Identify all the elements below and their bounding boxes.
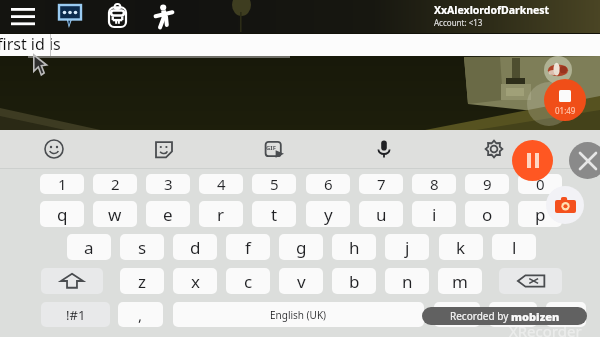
button[interactable]: h	[332, 234, 376, 260]
staticText: !#1	[66, 306, 86, 324]
button[interactable]: 2	[93, 174, 137, 194]
staticText: v	[297, 270, 306, 293]
button[interactable]: 4	[199, 174, 243, 194]
button[interactable]: XxAlexlordofDarknest	[434, 3, 550, 28]
button[interactable]: Menu	[8, 0, 38, 33]
staticText: z	[138, 270, 146, 293]
button[interactable]: ,	[118, 302, 163, 327]
button[interactable]: j	[385, 234, 429, 260]
button[interactable]: Voice input	[374, 139, 394, 159]
staticText: j	[405, 236, 410, 259]
button[interactable]: c	[226, 268, 270, 294]
staticText: k	[456, 236, 466, 259]
staticText: g	[296, 236, 307, 259]
button[interactable]: g	[279, 234, 323, 260]
button[interactable]: z	[120, 268, 164, 294]
staticText: m	[452, 270, 468, 293]
staticText: Account: <13	[434, 17, 483, 28]
staticText: ,	[138, 305, 143, 325]
staticText: s	[138, 236, 147, 259]
button[interactable]: f	[226, 234, 270, 260]
button[interactable]: p	[518, 201, 562, 227]
button[interactable]: w	[93, 201, 137, 227]
button[interactable]: GIF	[264, 139, 284, 159]
button[interactable]: q	[40, 201, 84, 227]
staticText: 01:49	[555, 105, 576, 116]
button[interactable]: i	[412, 201, 456, 227]
button[interactable]: l	[492, 234, 536, 260]
button[interactable]: b	[332, 268, 376, 294]
button[interactable]: 6	[306, 174, 350, 194]
button[interactable]: Settings	[484, 139, 504, 159]
button[interactable]: e	[146, 201, 190, 227]
button[interactable]: 1	[40, 174, 84, 194]
button[interactable]: Chat	[55, 0, 85, 33]
button[interactable]: 9	[465, 174, 509, 194]
staticText: b	[349, 270, 360, 293]
staticText: h	[349, 236, 360, 259]
button[interactable]: 0	[518, 174, 562, 194]
button[interactable]: Sticker	[154, 139, 174, 159]
button[interactable]: v	[279, 268, 323, 294]
button[interactable]: s	[120, 234, 164, 260]
button[interactable]: Camera	[546, 186, 584, 224]
button[interactable]: 5	[252, 174, 296, 194]
staticText: XxAlexlordofDarknest	[434, 3, 550, 17]
button[interactable]	[489, 302, 537, 327]
staticText: x	[191, 270, 200, 293]
staticText: y	[324, 203, 333, 226]
staticText: 7	[377, 174, 386, 194]
staticText: mobizen	[511, 309, 560, 324]
staticText: 8	[430, 174, 439, 194]
staticText: o	[482, 203, 493, 226]
staticText: 3	[164, 174, 173, 194]
button[interactable]: 3	[146, 174, 190, 194]
button[interactable]: r	[199, 201, 243, 227]
staticText: r	[217, 203, 225, 226]
staticText: 9	[483, 174, 492, 194]
button[interactable]: first id is	[0, 34, 600, 56]
button[interactable]: Emotes	[148, 0, 180, 33]
button[interactable]: !#1	[41, 302, 110, 327]
staticText: first id is	[0, 33, 61, 55]
button[interactable]: Backspace	[499, 268, 562, 294]
button[interactable]: Shift	[41, 268, 103, 294]
button[interactable]: d	[173, 234, 217, 260]
button[interactable]: x	[173, 268, 217, 294]
staticText: Recorded by	[450, 309, 511, 323]
staticText: GIF	[266, 144, 276, 152]
staticText: 4	[217, 174, 226, 194]
button[interactable]: n	[385, 268, 429, 294]
button[interactable]: y	[306, 201, 350, 227]
staticText: t	[271, 203, 278, 226]
staticText: 6	[324, 174, 333, 194]
button[interactable]: o	[465, 201, 509, 227]
button[interactable]: .	[434, 302, 480, 327]
staticText: u	[376, 203, 387, 226]
staticText: n	[402, 270, 413, 293]
button[interactable]: Emoji	[44, 139, 64, 159]
button[interactable]: Stop recording	[544, 79, 586, 121]
staticText: f	[245, 236, 251, 259]
staticText: 0	[536, 174, 545, 194]
button[interactable]: Pause recording	[512, 140, 553, 181]
staticText: a	[84, 236, 94, 259]
button[interactable]: 8	[412, 174, 456, 194]
button[interactable]: k	[439, 234, 483, 260]
button[interactable]: English (UK)	[173, 302, 424, 327]
button[interactable]: 7	[359, 174, 403, 194]
button[interactable]	[546, 302, 586, 327]
staticText: .	[455, 305, 460, 325]
staticText: c	[244, 270, 253, 293]
staticText: l	[512, 236, 517, 259]
staticText: 5	[270, 174, 279, 194]
staticText: XRecorder	[509, 321, 582, 337]
button[interactable]: u	[359, 201, 403, 227]
button[interactable]: t	[252, 201, 296, 227]
button[interactable]: Close	[569, 142, 600, 179]
staticText: w	[108, 203, 122, 226]
button[interactable]: m	[438, 268, 482, 294]
staticText: p	[535, 203, 546, 226]
button[interactable]: Backpack	[104, 0, 132, 33]
button[interactable]: a	[67, 234, 111, 260]
